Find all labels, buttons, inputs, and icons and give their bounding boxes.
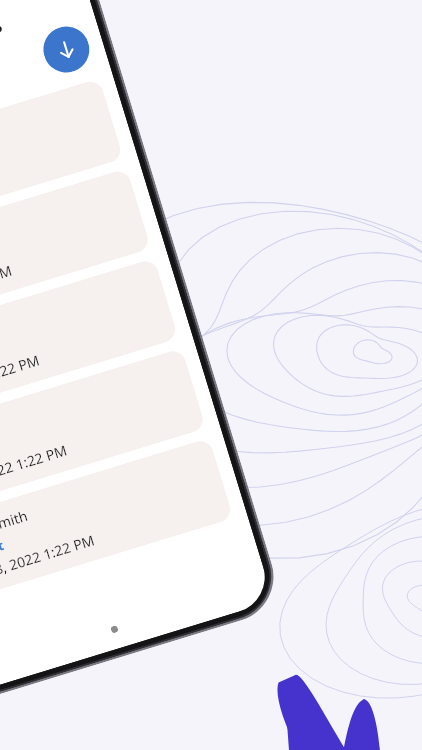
button[interactable]: Susan Smith bbox=[0, 348, 206, 514]
staticText: Oct 11, 2022 1:22 PM bbox=[0, 260, 15, 319]
staticText: Oct 10, 2022 1:22 PM bbox=[0, 350, 43, 409]
button[interactable]: Susan Smith bbox=[0, 258, 179, 424]
staticText: Susan Smith bbox=[0, 506, 30, 548]
staticText: Oct 09, 2022 1:22 PM bbox=[0, 440, 70, 499]
button[interactable]: Susan Smith bbox=[0, 78, 124, 244]
staticText: Present bbox=[0, 536, 6, 568]
button[interactable]: Susan Smith bbox=[0, 168, 151, 334]
staticText: Attendance Records for bbox=[0, 6, 27, 124]
button[interactable]: Download records bbox=[38, 21, 95, 78]
staticText: Oct 08, 2022 1:22 PM bbox=[0, 530, 97, 589]
button[interactable]: Susan Smith bbox=[0, 438, 234, 604]
